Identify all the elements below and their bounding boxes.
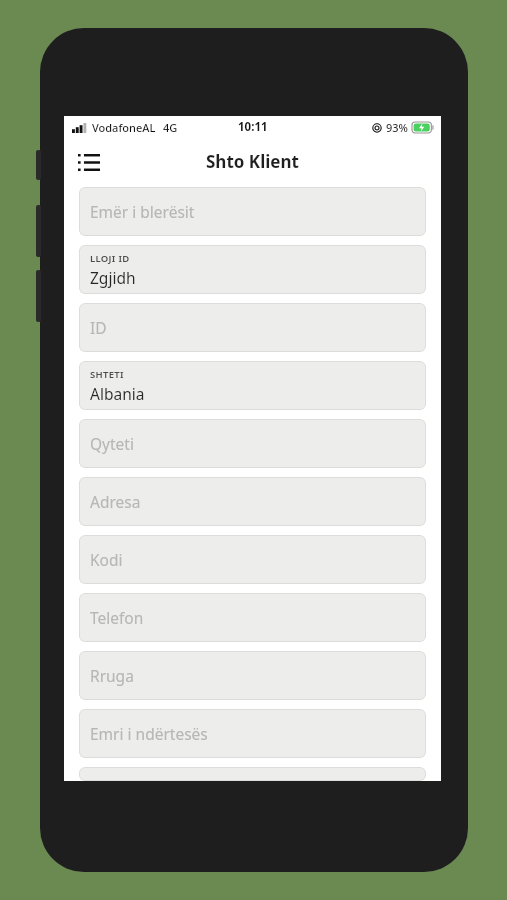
staticText: 93% <box>386 120 408 135</box>
staticText: SHTETI <box>90 368 124 381</box>
staticText: Zgjidh <box>90 267 136 288</box>
button[interactable]: Emër i blerësit <box>79 187 426 236</box>
staticText: 10:11 <box>238 119 268 135</box>
staticText: VodafoneAL <box>92 120 156 135</box>
button[interactable]: SHTETI <box>79 361 426 410</box>
staticText: Shto Klient <box>206 150 299 173</box>
staticText: Emër i blerësit <box>90 201 195 222</box>
staticText: Adresa <box>90 491 141 512</box>
staticText: Qyteti <box>90 433 134 454</box>
staticText: Kodi <box>90 549 123 570</box>
button[interactable]: Adresa <box>79 477 426 526</box>
button[interactable]: ID <box>79 303 426 352</box>
staticText: Telefon <box>90 607 144 628</box>
staticText: 4G <box>163 120 178 135</box>
button[interactable]: Telefon <box>79 593 426 642</box>
staticText: LLOJI ID <box>90 252 130 265</box>
button[interactable] <box>79 767 426 781</box>
button[interactable]: Kodi <box>79 535 426 584</box>
staticText: Emri i ndërtesës <box>90 723 208 744</box>
staticText: ID <box>90 317 107 338</box>
button[interactable]: Menu <box>72 145 106 179</box>
button[interactable]: Rruga <box>79 651 426 700</box>
staticText: Rruga <box>90 665 134 686</box>
button[interactable]: Qyteti <box>79 419 426 468</box>
staticText: Albania <box>90 383 145 404</box>
button[interactable]: Emri i ndërtesës <box>79 709 426 758</box>
button[interactable]: LLOJI ID <box>79 245 426 294</box>
